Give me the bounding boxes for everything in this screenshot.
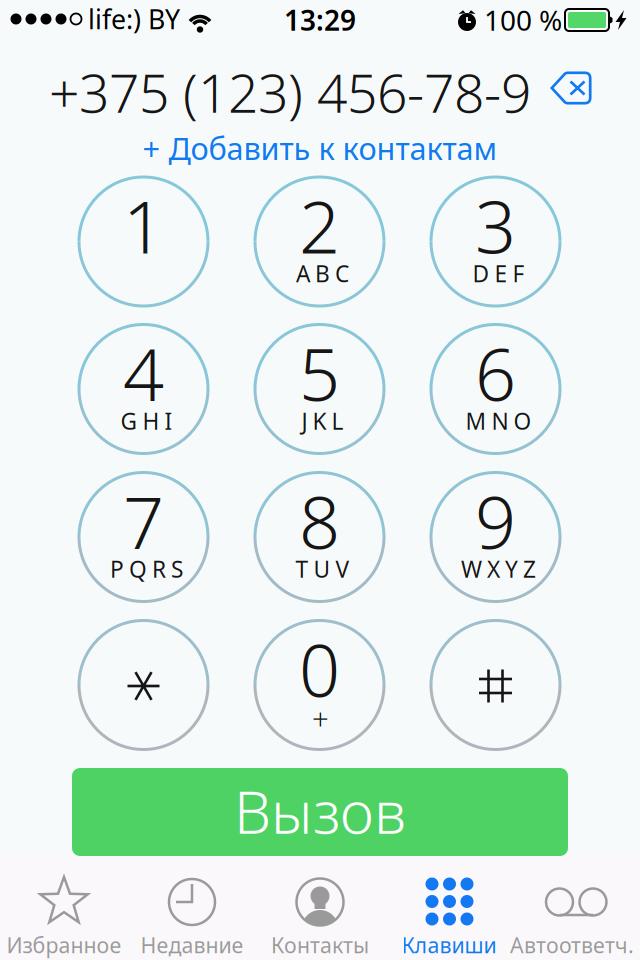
staticText: Клавиши bbox=[401, 931, 496, 959]
staticText: Автоответч. bbox=[510, 931, 634, 959]
button[interactable]: 2 bbox=[253, 175, 385, 307]
button[interactable]: Delete bbox=[550, 71, 592, 105]
staticText: MNO bbox=[465, 406, 531, 436]
button[interactable]: 4 bbox=[77, 323, 209, 455]
staticText: ABC bbox=[296, 258, 349, 288]
button[interactable]: Клавиши bbox=[385, 856, 513, 960]
staticText: Избранное bbox=[6, 931, 121, 959]
staticText: 3 bbox=[475, 178, 516, 273]
staticText: 13:29 bbox=[284, 1, 356, 39]
button[interactable] bbox=[429, 619, 561, 751]
button[interactable]: 8 bbox=[253, 471, 385, 603]
button[interactable]: 1 bbox=[77, 175, 209, 307]
button[interactable]: Избранное bbox=[0, 856, 128, 960]
button[interactable]: 7 bbox=[77, 471, 209, 603]
staticText: life:) BY bbox=[88, 1, 180, 37]
button[interactable]: 9 bbox=[429, 471, 561, 603]
button[interactable]: 6 bbox=[429, 323, 561, 455]
button[interactable]: + Добавить к контактам bbox=[134, 124, 505, 172]
staticText: GHI bbox=[120, 406, 172, 436]
button[interactable]: Недавние bbox=[128, 856, 256, 960]
button[interactable]: Автоответч. bbox=[508, 856, 636, 960]
staticText: 5 bbox=[299, 325, 340, 421]
staticText: + bbox=[312, 698, 329, 737]
staticText: +375 (123) 456-78-9 bbox=[49, 57, 531, 127]
button[interactable] bbox=[77, 619, 209, 751]
staticText: + Добавить к контактам bbox=[142, 128, 497, 168]
button[interactable]: 5 bbox=[253, 323, 385, 455]
staticText: 1 bbox=[123, 178, 164, 273]
staticText: 6 bbox=[475, 325, 516, 421]
staticText: 4 bbox=[123, 325, 164, 421]
staticText: 8 bbox=[299, 473, 340, 569]
staticText: JKL bbox=[301, 406, 343, 436]
staticText: DEF bbox=[472, 258, 524, 288]
staticText: PQRS bbox=[110, 554, 183, 584]
staticText: Вызов bbox=[234, 772, 406, 850]
button[interactable]: 3 bbox=[429, 175, 561, 307]
staticText: Недавние bbox=[140, 931, 243, 959]
staticText: TUV bbox=[295, 554, 349, 584]
button[interactable]: Вызов bbox=[72, 768, 568, 856]
staticText: WXYZ bbox=[461, 554, 536, 584]
button[interactable]: 0 bbox=[253, 619, 385, 751]
staticText: 0 bbox=[299, 621, 340, 717]
staticText: 100 % bbox=[484, 1, 562, 39]
staticText: Контакты bbox=[271, 931, 369, 959]
staticText: 7 bbox=[123, 473, 164, 569]
staticText: 2 bbox=[299, 178, 340, 273]
staticText: 9 bbox=[475, 473, 516, 569]
button[interactable]: Контакты bbox=[256, 856, 384, 960]
